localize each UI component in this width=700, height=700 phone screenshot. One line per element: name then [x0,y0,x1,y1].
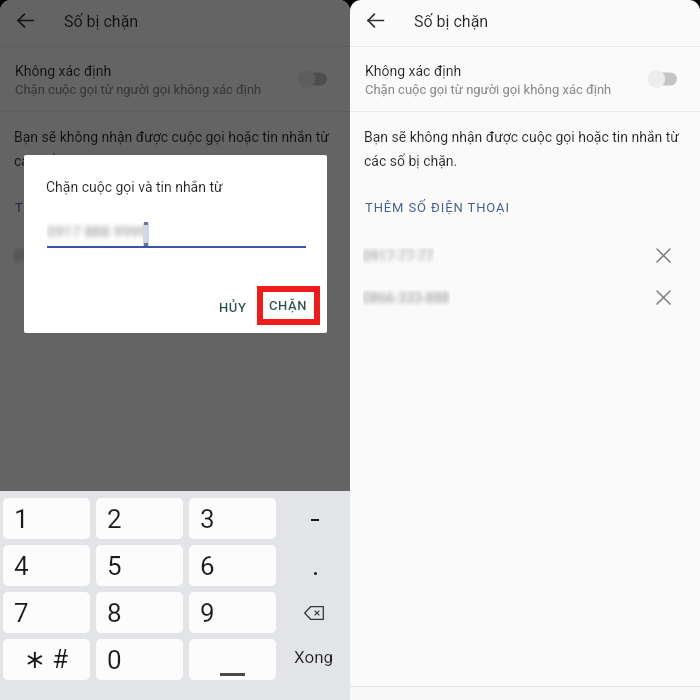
staticText: Số bị chặn [414,12,489,31]
staticText: Bạn sẽ không nhận được cuộc gọi hoặc tin… [14,129,339,169]
staticText: Xong [294,647,334,667]
button[interactable]: Không xác định [0,47,350,111]
staticText: 0917-77-77 [363,248,434,264]
button[interactable]: 0 [96,639,183,680]
staticText: Chặn cuộc gọi và tin nhắn từ [46,179,223,195]
button[interactable]: Period [279,545,349,586]
button[interactable] [189,639,276,680]
button[interactable]: CHẶN [263,292,314,319]
button[interactable]: 4 [3,545,90,586]
staticText: 2 [107,504,122,534]
staticText: 8 [107,598,122,628]
staticText: 3 [200,504,215,534]
button[interactable]: Remove number [300,242,326,268]
button[interactable]: 0917-77-77 [350,234,700,276]
staticText: 1 [14,504,29,534]
staticText: 0 [107,645,122,675]
button[interactable]: Back [9,4,42,37]
staticText: Không xác định [365,63,462,79]
staticText: Chặn cuộc gọi từ người gọi không xác địn… [365,82,612,97]
staticText: 5 [107,551,122,581]
staticText: 7 [14,598,29,628]
button[interactable]: Toggle unknown callers [291,60,337,98]
button[interactable]: Remove number [650,284,676,310]
other: Backspace [304,606,324,620]
staticText: 0917-77-77 [13,248,84,264]
staticText: Không xác định [15,63,112,79]
staticText: Chặn cuộc gọi từ người gọi không xác địn… [15,82,262,97]
staticText: 4 [14,551,29,581]
button[interactable]: Remove number [650,242,676,268]
staticText: Bạn sẽ không nhận được cuộc gọi hoặc tin… [364,129,689,169]
button[interactable]: 7 [3,592,90,633]
other: Period [314,572,317,575]
button[interactable]: Backspace [279,592,349,633]
staticText: THÊM SỐ ĐIỆN THOẠI [15,200,160,215]
staticText: THÊM SỐ ĐIỆN THOẠI [365,200,510,215]
staticText: Số bị chặn [64,12,139,31]
button[interactable]: 6 [189,545,276,586]
button[interactable]: Toggle unknown callers [641,60,687,98]
staticText: ∗ # [24,644,69,674]
staticText: CHẶN [269,298,308,313]
button[interactable]: Không xác định [350,47,700,111]
button[interactable]: 5 [96,545,183,586]
button[interactable]: 8 [96,592,183,633]
button[interactable]: 9 [189,592,276,633]
staticText: 9 [200,598,215,628]
button[interactable]: 0866-333-888 [350,276,700,318]
button[interactable]: 3 [189,498,276,539]
button[interactable]: THÊM SỐ ĐIỆN THOẠI [365,192,510,222]
button[interactable]: 0917-77-77 [0,234,350,276]
button[interactable]: 2 [96,498,183,539]
button[interactable]: THÊM SỐ ĐIỆN THOẠI [15,192,160,222]
button[interactable]: 1 [3,498,90,539]
button[interactable]: Xong [279,639,349,680]
button[interactable]: Dash [279,498,349,539]
staticText: HỦY [219,300,247,315]
staticText: 0866-333-888 [363,290,450,306]
button[interactable]: HỦY [207,293,258,321]
button[interactable]: Back [359,4,392,37]
staticText: 6 [200,551,215,581]
button[interactable]: ∗ # [3,639,90,680]
staticText: 0917 888 9999 [47,223,148,241]
